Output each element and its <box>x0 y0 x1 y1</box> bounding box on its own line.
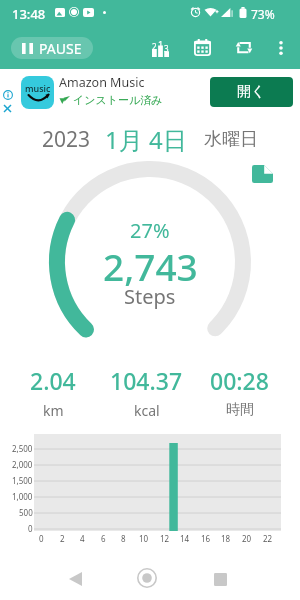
button[interactable]: Recents <box>199 558 241 600</box>
staticText: 2023 <box>42 125 91 154</box>
button[interactable]: Notes <box>246 158 278 190</box>
staticText: 2,500 <box>12 443 33 454</box>
staticText: 13:48 <box>12 5 46 23</box>
button[interactable]: 00:28 <box>193 365 286 419</box>
staticText: 3 <box>164 43 169 54</box>
staticText: 2 <box>60 533 65 544</box>
staticText: kcal <box>134 401 160 420</box>
staticText: 16 <box>201 533 211 544</box>
staticText: 1月 4日 <box>105 123 187 156</box>
staticText: 2,000 <box>12 459 33 470</box>
staticText: 8 <box>121 533 126 544</box>
staticText: Amazon Music <box>59 74 145 91</box>
staticText: 10 <box>139 533 149 544</box>
staticText: 14 <box>180 533 190 544</box>
button[interactable]: Ranking <box>140 27 181 68</box>
staticText: 開く <box>237 83 266 101</box>
staticText: 18 <box>221 533 231 544</box>
staticText: 12 <box>160 533 170 544</box>
staticText: 2 <box>152 41 157 52</box>
button[interactable]: 開く <box>210 77 293 107</box>
staticText: 27% <box>130 217 170 244</box>
button[interactable]: Home <box>126 557 168 599</box>
button[interactable]: 2.04 <box>6 365 100 420</box>
staticText: 6 <box>101 533 106 544</box>
staticText: 2,743 <box>103 241 198 291</box>
staticText: 1 <box>158 38 164 50</box>
staticText: Steps <box>124 283 176 310</box>
staticText: 時間 <box>226 401 254 419</box>
button[interactable]: 104.37 <box>100 365 193 420</box>
staticText: 73% <box>251 6 275 22</box>
staticText: 104.37 <box>110 365 183 396</box>
button[interactable]: Calendar <box>182 27 223 68</box>
staticText: 1,000 <box>12 491 33 502</box>
staticText: 500 <box>19 507 33 518</box>
staticText: インストール済み <box>73 93 163 107</box>
staticText: 0 <box>28 523 33 534</box>
button[interactable]: Sync <box>223 27 264 68</box>
staticText: 4 <box>80 533 85 544</box>
button[interactable]: Back <box>54 558 96 600</box>
staticText: 00:28 <box>210 365 269 396</box>
staticText: 20 <box>242 533 252 544</box>
button[interactable]: PAUSE <box>11 37 93 59</box>
staticText: 水曜日 <box>204 128 258 151</box>
staticText: 0 <box>39 533 44 544</box>
staticText: PAUSE <box>39 39 82 58</box>
staticText: music <box>25 82 51 94</box>
staticText: 22 <box>263 533 273 544</box>
staticText: 1,500 <box>12 475 33 486</box>
staticText: 2.04 <box>30 365 76 396</box>
staticText: km <box>43 401 64 420</box>
button[interactable]: More options <box>264 27 298 68</box>
